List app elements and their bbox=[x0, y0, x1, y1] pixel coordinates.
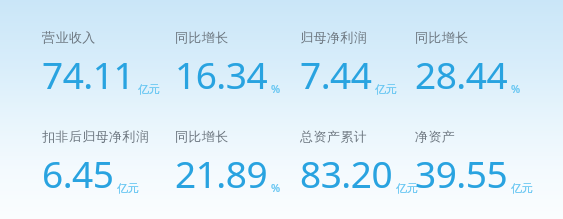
staticText: 同比增长 bbox=[175, 29, 229, 45]
staticText: % bbox=[271, 81, 281, 96]
staticText: 同比增长 bbox=[175, 128, 229, 144]
staticText: 6.45 bbox=[42, 148, 114, 198]
staticText: 扣非后归母净利润 bbox=[42, 128, 150, 144]
staticText: 亿元 bbox=[511, 181, 533, 195]
staticText: 83.20 bbox=[300, 148, 393, 198]
staticText: 亿元 bbox=[117, 181, 139, 195]
staticText: 同比增长 bbox=[415, 29, 469, 45]
staticText: 7.44 bbox=[300, 49, 372, 99]
staticText: % bbox=[511, 81, 521, 96]
staticText: 营业收入 bbox=[42, 29, 96, 45]
staticText: 亿元 bbox=[138, 82, 160, 96]
staticText: 21.89 bbox=[175, 148, 268, 198]
staticText: 亿元 bbox=[375, 82, 397, 96]
staticText: 16.34 bbox=[175, 49, 268, 99]
staticText: % bbox=[271, 180, 281, 195]
staticText: 总资产累计 bbox=[300, 128, 367, 144]
staticText: 28.44 bbox=[415, 49, 508, 99]
staticText: 39.55 bbox=[415, 148, 508, 198]
staticText: 74.11 bbox=[42, 49, 135, 99]
staticText: 归母净利润 bbox=[300, 29, 367, 45]
staticText: 亿元 bbox=[396, 181, 418, 195]
staticText: 净资产 bbox=[415, 128, 456, 144]
